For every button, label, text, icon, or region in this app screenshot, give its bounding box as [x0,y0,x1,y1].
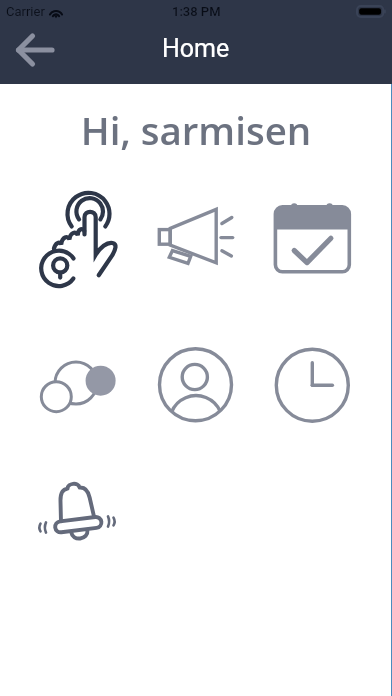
button[interactable]: Announcements [148,198,243,274]
staticText: 1:38 PM [172,4,221,19]
button[interactable]: Notifications [32,476,124,552]
button[interactable]: Clock [266,339,359,432]
button[interactable]: Tap gesture [33,176,128,297]
button[interactable]: Groups [31,350,126,422]
button[interactable]: Calendar [265,193,360,282]
button[interactable]: Profile [149,338,242,431]
button[interactable]: Back [13,28,57,72]
staticText: Home [162,34,230,63]
staticText: Carrier [6,4,45,19]
staticText: Hi, sarmisen [0,104,392,156]
